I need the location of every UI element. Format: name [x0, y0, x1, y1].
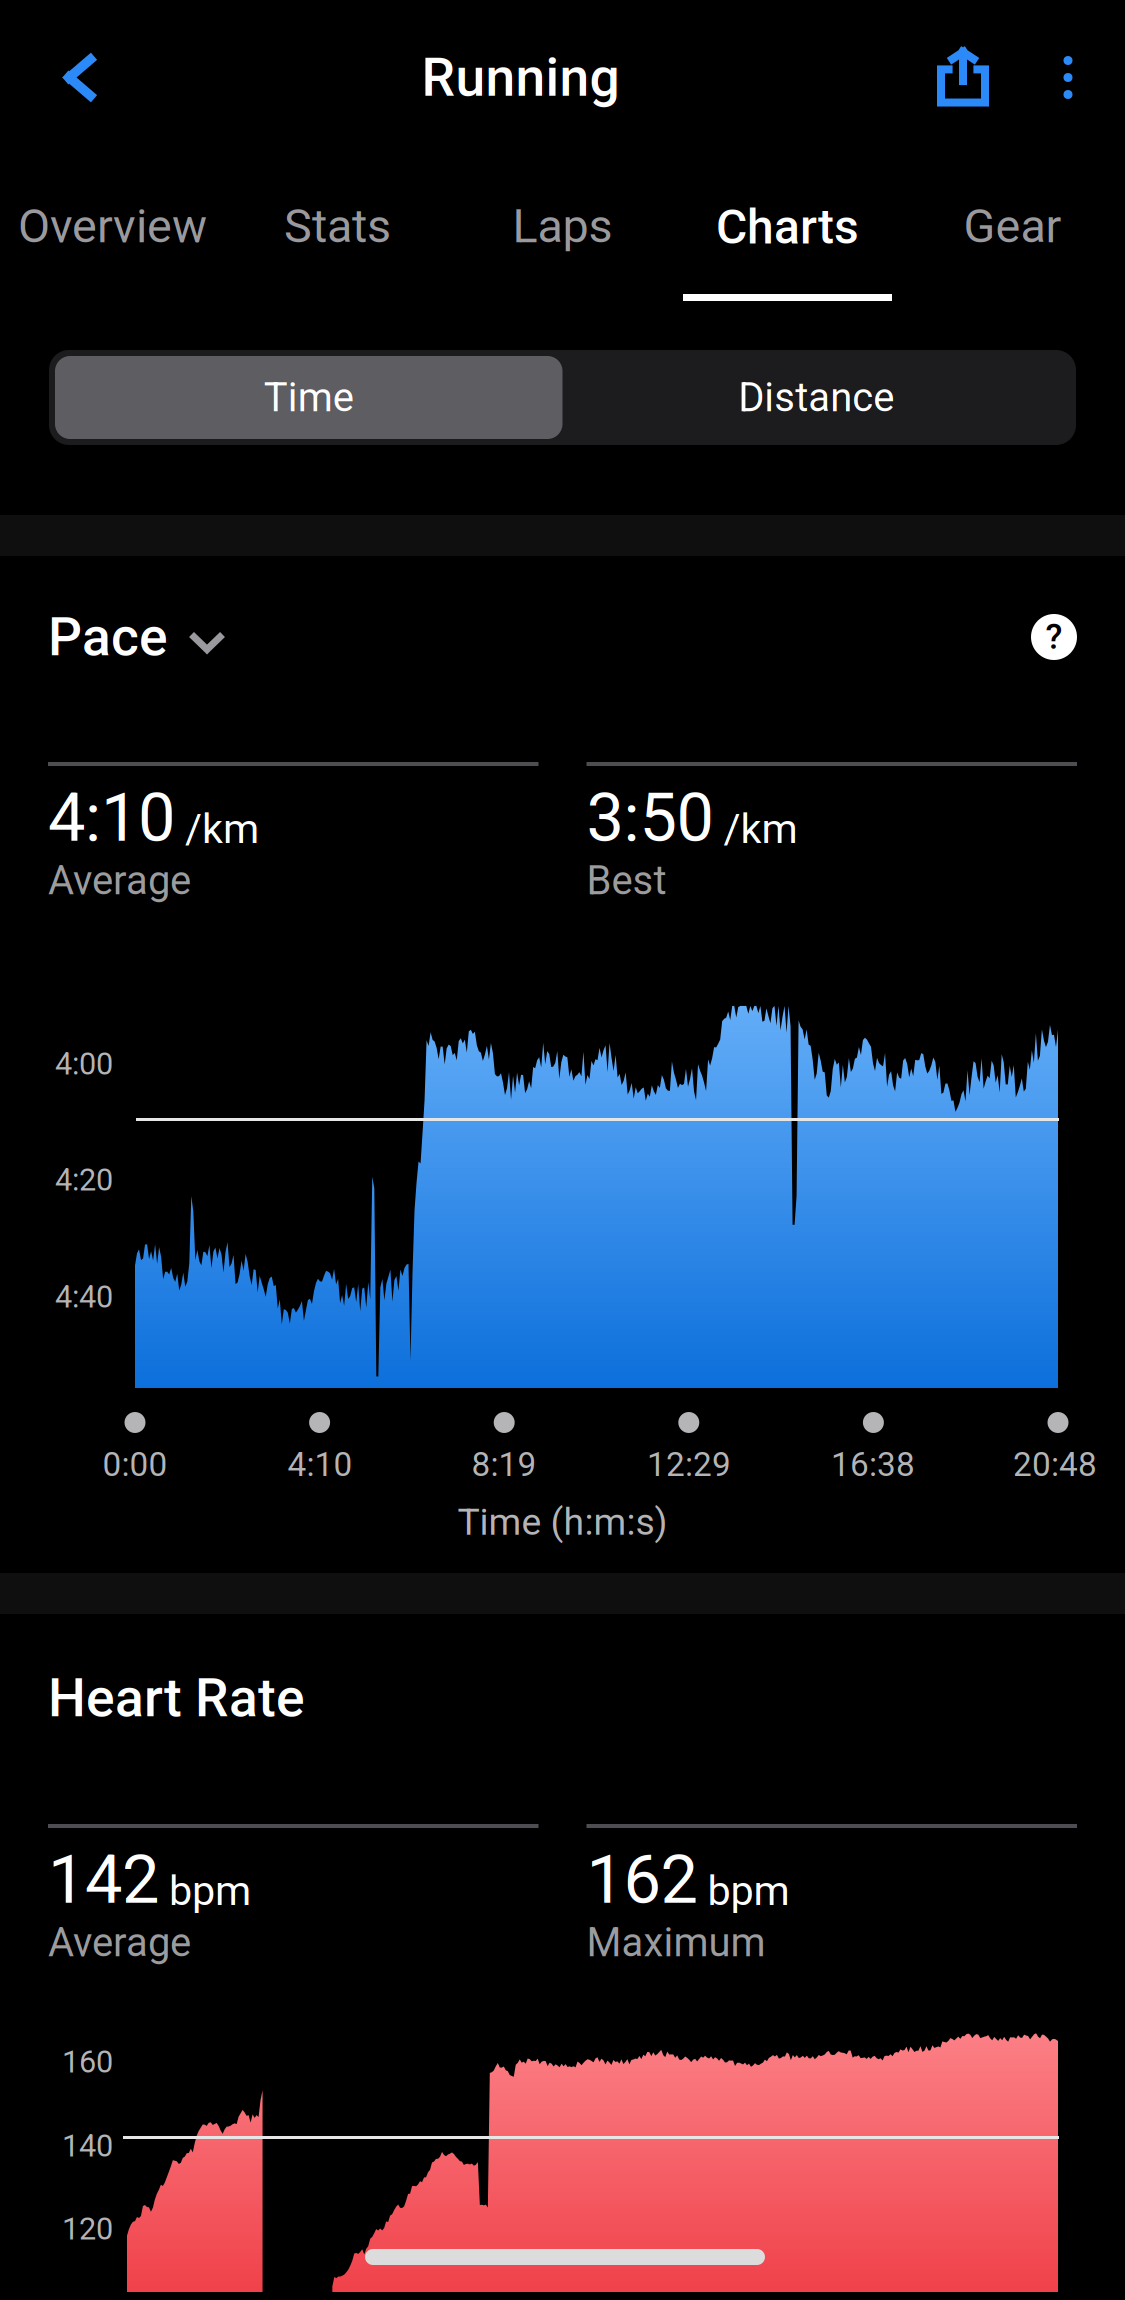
staticText: Best	[586, 857, 666, 904]
staticText: Time	[264, 374, 354, 421]
staticText: Average	[48, 1919, 191, 1966]
staticText: 142	[48, 1841, 159, 1919]
staticText: 140	[62, 2128, 113, 2164]
staticText: Distance	[738, 374, 894, 421]
button[interactable]: More options	[1019, 0, 1125, 155]
staticText: 4:40	[55, 1279, 113, 1315]
staticText: 3:50	[586, 779, 713, 857]
button[interactable]: Help	[1031, 614, 1077, 660]
button[interactable]: Distance	[562, 356, 1070, 439]
staticText: /km	[713, 805, 797, 853]
staticText: Heart Rate	[48, 1667, 305, 1729]
button[interactable]: Stats	[225, 155, 450, 320]
staticText: /km	[175, 805, 259, 853]
staticText: 120	[62, 2211, 113, 2247]
button[interactable]: Pace	[48, 606, 226, 668]
staticText: Time (h:m:s)	[457, 1500, 667, 1544]
staticText: bpm	[697, 1867, 789, 1915]
staticText: 4:20	[55, 1162, 113, 1198]
staticText: Gear	[963, 199, 1061, 254]
button[interactable]: Back	[0, 0, 134, 155]
staticText: Running	[421, 46, 619, 109]
button[interactable]: Charts	[675, 155, 900, 320]
staticText: 8:19	[471, 1445, 536, 1484]
staticText: 12:29	[647, 1445, 731, 1484]
button[interactable]: Laps	[450, 155, 675, 320]
staticText: Stats	[284, 199, 391, 254]
staticText: ?	[1045, 617, 1062, 657]
staticText: Maximum	[586, 1919, 765, 1966]
staticText: Laps	[512, 199, 612, 254]
staticText: 160	[62, 2044, 113, 2080]
staticText: 4:10	[48, 779, 175, 857]
staticText: 20:48	[1013, 1445, 1097, 1484]
button[interactable]: Gear	[900, 155, 1125, 320]
staticText: Average	[48, 857, 191, 904]
button[interactable]: Overview	[0, 155, 225, 320]
staticText: Pace	[48, 606, 168, 668]
staticText: 4:10	[287, 1445, 352, 1484]
staticText: 16:38	[831, 1445, 915, 1484]
staticText: 0:00	[102, 1445, 167, 1484]
button[interactable]: Share	[907, 0, 1019, 155]
staticText: bpm	[159, 1867, 251, 1915]
staticText: 162	[586, 1841, 697, 1919]
staticText: Overview	[18, 199, 207, 254]
button[interactable]: Time	[55, 356, 562, 439]
staticText: Charts	[716, 199, 859, 255]
staticText: 4:00	[55, 1046, 113, 1082]
